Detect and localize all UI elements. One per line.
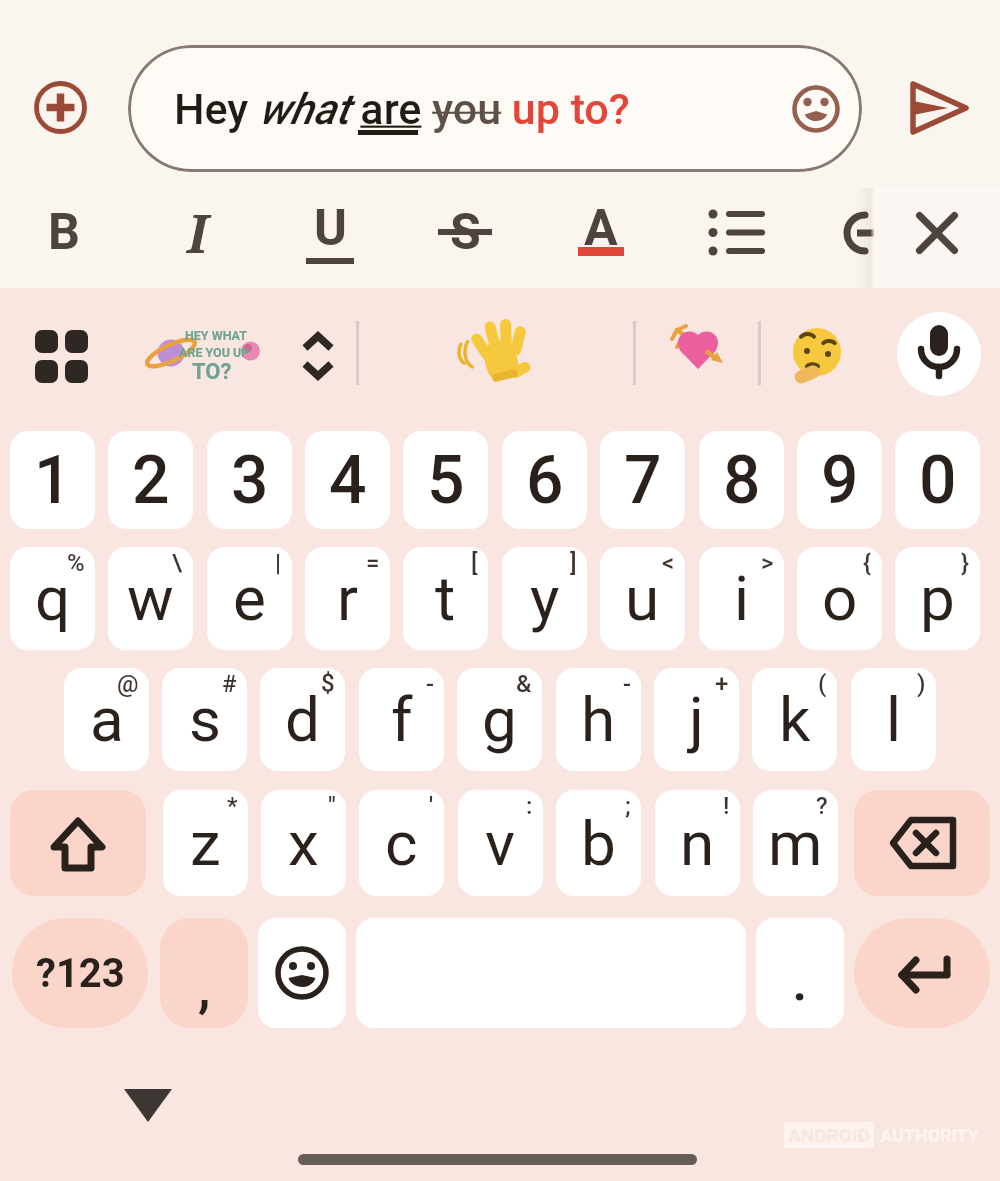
staticText: !	[723, 792, 730, 820]
button[interactable]: .	[756, 918, 844, 1028]
staticText: &	[516, 670, 532, 698]
button[interactable]	[30, 325, 93, 388]
button[interactable]	[792, 85, 840, 133]
button[interactable]: U	[260, 173, 400, 283]
button[interactable]: 2	[108, 431, 193, 529]
button[interactable]: l	[851, 668, 936, 771]
button[interactable]: b	[556, 790, 641, 896]
staticText: B	[48, 203, 80, 262]
button[interactable]: 3	[207, 431, 292, 529]
staticText: "	[328, 792, 336, 820]
staticText: >	[761, 549, 774, 577]
button[interactable]: p	[895, 547, 980, 650]
staticText: r	[337, 562, 359, 635]
button[interactable]: j	[654, 668, 739, 771]
button[interactable]: o	[797, 547, 882, 650]
staticText: x	[288, 807, 319, 880]
staticText: u	[625, 562, 660, 635]
button[interactable]: HEY WHAT	[145, 310, 275, 400]
button[interactable]: 8	[699, 431, 784, 529]
staticText: 4	[329, 442, 367, 519]
button[interactable]	[30, 77, 91, 138]
button[interactable]: n	[655, 790, 740, 896]
staticText: i	[734, 562, 750, 635]
staticText: 5	[427, 442, 465, 519]
button[interactable]	[112, 1078, 184, 1134]
staticText: 0	[919, 442, 957, 519]
button[interactable]: g	[457, 668, 542, 771]
button[interactable]: Hey what are you up to?	[128, 45, 862, 172]
staticText: o	[822, 562, 858, 635]
button[interactable]	[897, 312, 981, 396]
button[interactable]: 0	[895, 431, 980, 529]
button[interactable]: x	[261, 790, 346, 896]
staticText: 8	[723, 442, 761, 519]
staticText: 1	[34, 442, 72, 519]
button[interactable]: ,	[160, 918, 248, 1028]
staticText: z	[190, 807, 221, 880]
button[interactable]: d	[260, 668, 345, 771]
button[interactable]: 5	[403, 431, 488, 529]
button[interactable]: A	[531, 173, 671, 283]
button[interactable]: m	[753, 790, 838, 896]
button[interactable]: c	[359, 790, 444, 896]
button[interactable]	[854, 918, 990, 1028]
button[interactable]: y	[502, 547, 587, 650]
button[interactable]	[700, 196, 774, 270]
button[interactable]: 4	[305, 431, 390, 529]
staticText: ?123	[36, 950, 125, 997]
button[interactable]	[455, 310, 541, 396]
button[interactable]: 1	[10, 431, 95, 529]
button[interactable]: v	[458, 790, 543, 896]
staticText: b	[581, 807, 616, 880]
button[interactable]: S	[395, 177, 535, 287]
staticText: c	[385, 807, 418, 880]
button[interactable]	[658, 310, 738, 390]
staticText: +	[715, 670, 729, 698]
button[interactable]: ?123	[12, 918, 148, 1028]
button[interactable]: I	[127, 177, 267, 287]
button[interactable]	[777, 314, 857, 394]
staticText: y	[530, 562, 560, 635]
staticText: TO?	[192, 359, 232, 385]
button[interactable]: q	[10, 547, 95, 650]
button[interactable]	[258, 918, 346, 1028]
staticText: $	[321, 670, 335, 698]
staticText: k	[779, 683, 811, 756]
button[interactable]: a	[64, 668, 149, 771]
staticText: :	[526, 792, 533, 820]
staticText: 2	[132, 442, 170, 519]
button[interactable]: 6	[502, 431, 587, 529]
button[interactable]: 9	[797, 431, 882, 529]
button[interactable]: f	[359, 668, 444, 771]
staticText: %	[67, 549, 85, 577]
button[interactable]	[900, 72, 980, 144]
staticText: =	[366, 549, 380, 577]
button[interactable]: z	[163, 790, 248, 896]
button[interactable]: h	[556, 668, 641, 771]
staticText: 7	[624, 442, 662, 519]
staticText: <	[662, 549, 675, 577]
button[interactable]: k	[752, 668, 837, 771]
staticText: )	[917, 670, 926, 698]
staticText: t	[435, 562, 456, 635]
button[interactable]	[10, 790, 146, 896]
button[interactable]: s	[162, 668, 247, 771]
button[interactable]: t	[403, 547, 488, 650]
button[interactable]	[292, 325, 344, 387]
staticText: s	[189, 683, 221, 756]
button[interactable]: w	[108, 547, 193, 650]
staticText: ANDROID	[788, 1124, 870, 1146]
button[interactable]: B	[0, 177, 134, 287]
button[interactable]	[905, 200, 969, 264]
button[interactable]	[854, 790, 990, 896]
button[interactable]: e	[207, 547, 292, 650]
staticText: .	[792, 948, 808, 1014]
button[interactable]: u	[600, 547, 685, 650]
button[interactable]: r	[305, 547, 390, 650]
button[interactable]: i	[699, 547, 784, 650]
button[interactable]: 7	[600, 431, 685, 529]
staticText: {	[863, 549, 872, 577]
staticText: m	[768, 807, 823, 880]
